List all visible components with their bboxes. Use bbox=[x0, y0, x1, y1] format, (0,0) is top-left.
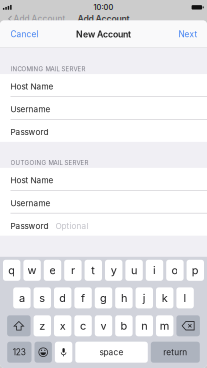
staticText: u bbox=[131, 264, 137, 277]
staticText: s bbox=[39, 291, 45, 304]
button[interactable]: Cancel bbox=[0, 23, 38, 45]
button[interactable]: i bbox=[146, 260, 163, 281]
staticText: return bbox=[163, 347, 187, 357]
staticText: d bbox=[59, 291, 66, 304]
button[interactable]: a bbox=[13, 287, 31, 308]
staticText: Password bbox=[10, 127, 48, 137]
staticText: x bbox=[60, 319, 66, 332]
button[interactable]: z bbox=[34, 315, 51, 336]
staticText: q bbox=[8, 264, 15, 277]
button[interactable]: f bbox=[74, 287, 92, 308]
button[interactable]: Host Name bbox=[0, 74, 207, 96]
staticText: Username bbox=[10, 198, 50, 208]
button[interactable]: n bbox=[136, 315, 153, 336]
button[interactable]: g bbox=[95, 287, 112, 308]
button[interactable]: w bbox=[23, 260, 41, 281]
staticText: Add Account bbox=[13, 14, 65, 24]
button[interactable]: y bbox=[105, 260, 122, 281]
staticText: f bbox=[81, 291, 85, 304]
staticText: Cancel bbox=[10, 29, 38, 39]
staticText: y bbox=[111, 264, 117, 277]
staticText: Host Name bbox=[10, 175, 53, 185]
button[interactable]: Password bbox=[0, 213, 207, 236]
button[interactable]: Shift bbox=[7, 315, 31, 336]
staticText: n bbox=[141, 319, 147, 332]
staticText: New Account bbox=[76, 29, 131, 39]
staticText: INCOMING MAIL SERVER bbox=[10, 65, 85, 73]
staticText: Optional bbox=[55, 221, 88, 231]
button[interactable]: b bbox=[115, 315, 133, 336]
button[interactable]: Dictate bbox=[55, 342, 72, 363]
button[interactable]: x bbox=[54, 315, 71, 336]
staticText: e bbox=[49, 264, 55, 277]
button[interactable]: return bbox=[151, 342, 200, 363]
staticText: g bbox=[100, 291, 107, 304]
staticText: j bbox=[143, 291, 146, 304]
button[interactable]: h bbox=[115, 287, 133, 308]
staticText: w bbox=[28, 264, 37, 277]
button[interactable]: o bbox=[166, 260, 184, 281]
button[interactable]: l bbox=[176, 287, 194, 308]
button[interactable]: Password bbox=[0, 120, 207, 142]
button[interactable]: space bbox=[75, 342, 148, 363]
staticText: OUTGOING MAIL SERVER bbox=[10, 159, 88, 166]
button[interactable]: Host Name bbox=[0, 168, 207, 190]
staticText: Add Account bbox=[77, 14, 129, 24]
staticText: l bbox=[184, 291, 187, 304]
button[interactable]: k bbox=[156, 287, 173, 308]
button[interactable]: Next bbox=[178, 23, 207, 45]
staticText: i bbox=[153, 264, 156, 277]
button[interactable]: q bbox=[3, 260, 20, 281]
button[interactable]: c bbox=[74, 315, 92, 336]
staticText: m bbox=[160, 319, 170, 332]
button[interactable]: Delete bbox=[176, 315, 200, 336]
staticText: Host Name bbox=[10, 82, 53, 91]
staticText: Username bbox=[10, 104, 50, 114]
button[interactable]: Add Account bbox=[0, 14, 65, 24]
button[interactable]: p bbox=[187, 260, 204, 281]
staticText: b bbox=[120, 319, 127, 332]
staticText: 123 bbox=[13, 347, 26, 357]
button[interactable]: u bbox=[125, 260, 143, 281]
button[interactable]: d bbox=[54, 287, 71, 308]
staticText: 10:00 bbox=[93, 3, 113, 12]
button[interactable]: Numbers bbox=[7, 342, 31, 363]
staticText: o bbox=[171, 264, 178, 277]
staticText: v bbox=[100, 319, 106, 332]
button[interactable]: Emoji bbox=[34, 342, 52, 363]
staticText: space bbox=[99, 347, 123, 357]
staticText: Password bbox=[10, 221, 48, 231]
staticText: r bbox=[71, 264, 75, 277]
button[interactable]: Username bbox=[0, 97, 207, 119]
button[interactable]: r bbox=[64, 260, 82, 281]
button[interactable]: v bbox=[95, 315, 112, 336]
button[interactable]: s bbox=[34, 287, 51, 308]
staticText: h bbox=[121, 291, 127, 304]
button[interactable]: m bbox=[156, 315, 173, 336]
button[interactable]: t bbox=[85, 260, 102, 281]
staticText: p bbox=[192, 264, 199, 277]
button[interactable]: j bbox=[136, 287, 153, 308]
staticText: Next bbox=[178, 29, 197, 39]
staticText: c bbox=[80, 319, 86, 332]
button[interactable]: e bbox=[44, 260, 61, 281]
staticText: a bbox=[19, 291, 25, 304]
staticText: k bbox=[162, 291, 168, 304]
staticText: z bbox=[39, 319, 45, 332]
staticText: t bbox=[91, 264, 95, 277]
button[interactable]: Username bbox=[0, 191, 207, 213]
